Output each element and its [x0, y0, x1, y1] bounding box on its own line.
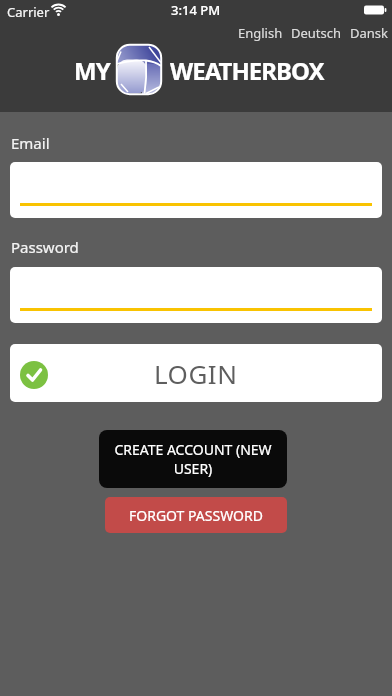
staticText: Deutsch: [291, 24, 342, 42]
staticText: MY: [74, 54, 110, 87]
staticText: WEATHERBOX: [170, 54, 324, 87]
staticText: Carrier: [7, 3, 50, 21]
staticText: FORGOT PASSWORD: [129, 506, 263, 525]
staticText: English: [238, 24, 283, 42]
button[interactable]: Deutsch: [287, 22, 346, 44]
button[interactable]: [10, 162, 382, 218]
staticText: Dansk: [350, 24, 388, 42]
button[interactable]: English: [234, 22, 287, 44]
staticText: CREATE ACCOUNT (NEW USER): [114, 440, 272, 478]
staticText: 3:14 PM: [171, 1, 221, 19]
staticText: LOGIN: [154, 356, 238, 391]
button[interactable]: LOGIN: [10, 344, 382, 402]
staticText: Email: [11, 133, 50, 153]
button[interactable]: Dansk: [346, 22, 392, 44]
staticText: Password: [11, 237, 79, 257]
button[interactable]: [10, 267, 382, 323]
button[interactable]: CREATE ACCOUNT (NEW USER): [99, 430, 287, 488]
button[interactable]: FORGOT PASSWORD: [105, 497, 287, 533]
